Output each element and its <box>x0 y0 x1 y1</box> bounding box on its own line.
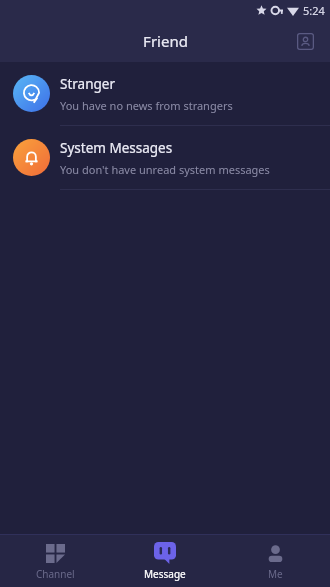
staticText: You don't have unread system messages <box>60 162 270 177</box>
button[interactable]: Stranger <box>0 62 330 125</box>
staticText: Message <box>144 567 186 581</box>
button[interactable]: Channel <box>0 535 110 587</box>
staticText: Friend <box>143 31 188 51</box>
staticText: You have no news from strangers <box>60 98 233 113</box>
button[interactable]: Contacts <box>288 24 322 58</box>
staticText: Channel <box>36 567 75 581</box>
staticText: 5:24 <box>303 3 325 18</box>
button[interactable]: System Messages <box>0 126 330 189</box>
button[interactable]: Me <box>220 535 330 587</box>
staticText: Stranger <box>60 75 115 93</box>
staticText: System Messages <box>60 139 173 157</box>
staticText: Me <box>268 567 283 581</box>
button[interactable]: Message <box>110 535 220 587</box>
